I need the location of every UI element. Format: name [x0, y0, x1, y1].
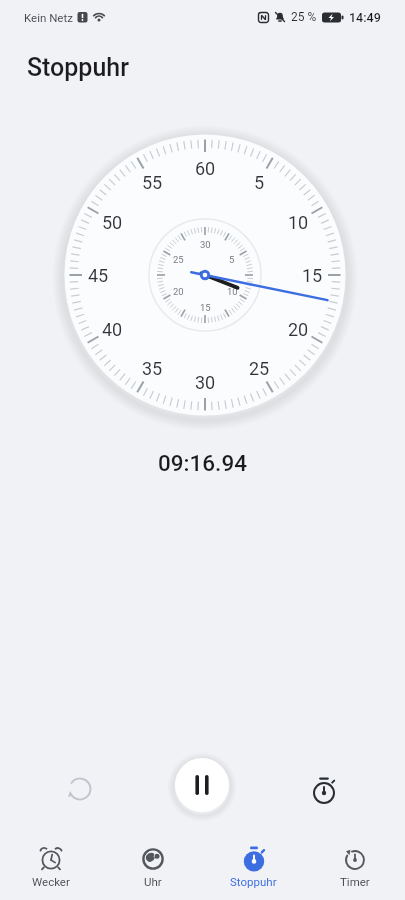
staticText: Stoppuhr	[27, 53, 130, 82]
staticText: 35	[142, 358, 163, 379]
staticText: 30	[200, 239, 211, 250]
button[interactable]: Uhr	[102, 836, 203, 900]
staticText: 25	[173, 254, 184, 265]
staticText: 14:49	[349, 10, 381, 25]
button[interactable]: Stoppuhr	[203, 836, 304, 900]
button[interactable]	[175, 758, 229, 812]
staticText: Uhr	[144, 875, 162, 888]
staticText: 25	[249, 358, 270, 379]
staticText: 15	[302, 265, 323, 286]
staticText: 55	[142, 172, 163, 193]
button[interactable]: Wecker	[0, 836, 102, 900]
staticText: 50	[102, 212, 123, 233]
button[interactable]: Timer	[304, 836, 405, 900]
staticText: 30	[195, 372, 216, 393]
staticText: 10	[288, 212, 309, 233]
staticText: 20	[288, 319, 309, 340]
button[interactable]	[56, 765, 104, 813]
button[interactable]	[300, 767, 348, 815]
staticText: 20	[173, 286, 184, 297]
staticText: 60	[195, 158, 216, 179]
staticText: 40	[102, 319, 123, 340]
staticText: Kein Netz	[24, 11, 73, 24]
staticText: 09:16.94	[158, 450, 247, 476]
staticText: 5	[254, 172, 265, 193]
staticText: Wecker	[32, 875, 70, 888]
staticText: 5	[229, 254, 235, 265]
staticText: Timer	[340, 875, 370, 888]
staticText: 15	[200, 302, 211, 313]
staticText: 45	[88, 265, 109, 286]
staticText: 25 %	[291, 10, 317, 24]
staticText: 10	[227, 286, 238, 297]
staticText: Stoppuhr	[230, 875, 277, 888]
